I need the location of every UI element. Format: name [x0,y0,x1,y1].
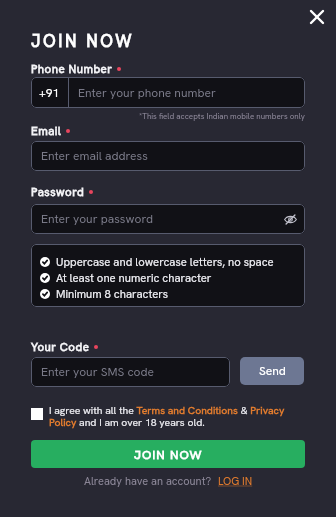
staticText: Send [259,363,286,379]
staticText: Minimum 8 characters [56,287,169,302]
staticText: JOIN NOW [134,446,203,462]
staticText: Enter your phone number [78,85,216,101]
staticText: +91 [39,85,60,101]
staticText: Uppercase and lowercase letters, no spac… [56,255,274,270]
button[interactable]: Enter your password [31,204,305,234]
staticText: Phone Number [31,61,113,76]
button[interactable]: Close [303,3,331,31]
staticText: Your Code [31,339,90,354]
staticText: Password [31,184,85,199]
staticText: JOIN NOW [31,30,135,52]
button[interactable]: +91 [31,77,305,108]
button[interactable]: Enter your SMS code [31,357,230,387]
staticText: At least one numeric character [56,271,212,286]
staticText: I agree with all the Terms and Condition… [49,404,305,429]
staticText: Email [31,123,62,138]
button[interactable]: JOIN NOW [31,440,305,468]
button[interactable]: LOG IN [218,474,253,488]
staticText: Enter email address [41,148,148,164]
button[interactable]: Send [240,357,304,385]
staticText: *This field accepts Indian mobile number… [31,111,305,121]
staticText: Already have an account? [84,474,212,488]
staticText: Enter your password [41,211,153,227]
button[interactable]: Show password [275,204,305,234]
button[interactable]: Enter email address [31,141,305,171]
staticText: Enter your SMS code [41,364,155,380]
